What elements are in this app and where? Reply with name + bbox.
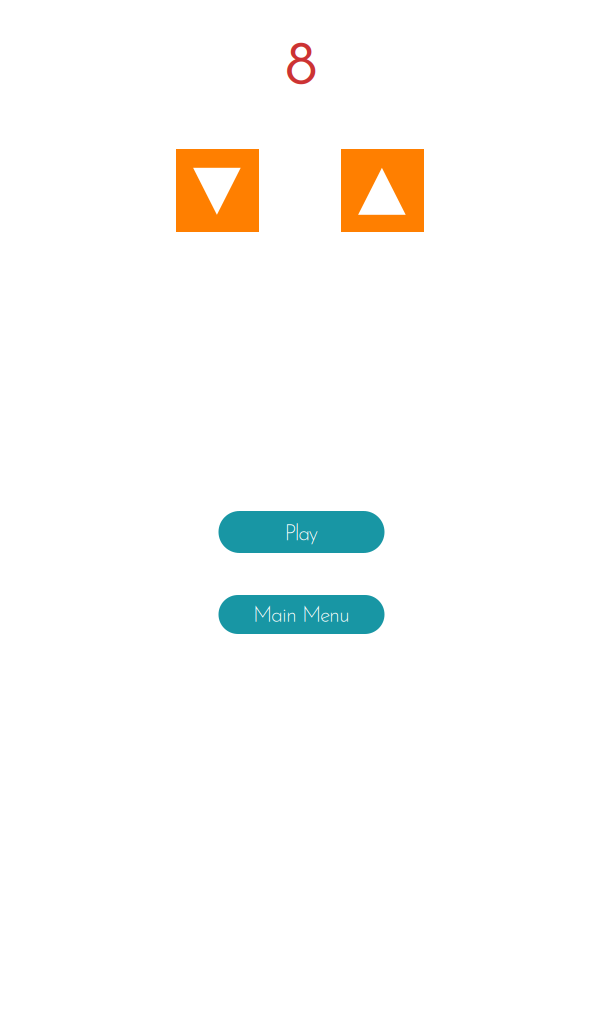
staticText: Main Menu xyxy=(253,606,350,627)
button[interactable]: Main Menu xyxy=(218,595,384,634)
staticText: 8 xyxy=(285,37,318,99)
staticText: Play xyxy=(284,524,319,546)
button[interactable]: Play xyxy=(218,511,384,553)
button[interactable]: Move down xyxy=(176,149,259,232)
button[interactable]: Move up xyxy=(341,149,424,232)
